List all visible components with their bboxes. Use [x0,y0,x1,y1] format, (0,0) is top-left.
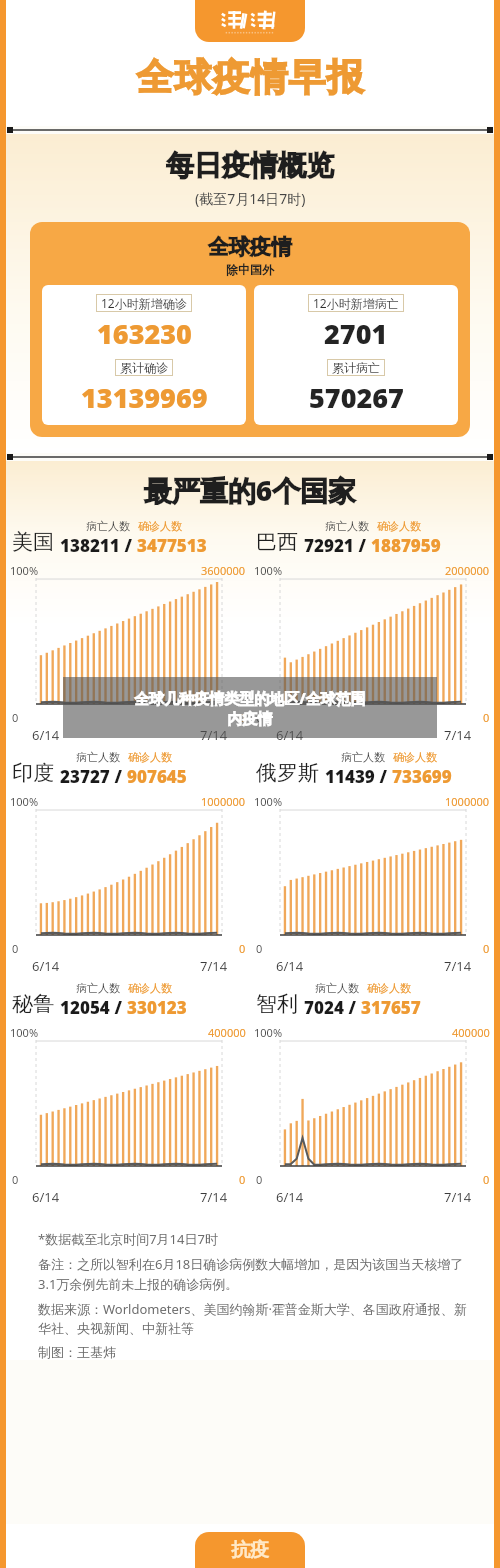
staticText: 7/14 [200,726,228,744]
staticText: 除中国外 [226,262,274,277]
staticText: 每日疫情概览 [166,148,334,183]
staticText: 163230 [97,315,192,352]
button[interactable]: 俄罗斯 [250,750,494,981]
staticText: 病亡人数 [76,750,120,764]
staticText: / [110,765,127,788]
staticText: 最严重的6个国家 [6,471,494,509]
staticText: 美国 [12,529,54,555]
staticText: 巴西 [256,529,298,555]
button[interactable]: 巴西 [250,519,494,750]
staticText: 病亡人数 [86,519,130,533]
staticText: 6/14 [32,1188,60,1206]
staticText: 23727 [60,765,110,788]
staticText: 7/14 [444,957,472,975]
staticText: 6/14 [276,726,304,744]
staticText: 13139969 [81,379,208,416]
staticText: 智利 [256,991,298,1017]
staticText: 2701 [324,315,388,352]
button[interactable]: The Paper logo [195,0,305,42]
staticText: 0 [256,710,263,725]
staticText: 733699 [392,765,452,788]
button[interactable]: 智利 [250,981,494,1212]
button[interactable]: 秘鲁 [6,981,250,1212]
button[interactable]: 12小时新增病亡 [254,285,458,425]
staticText: 1000000 [201,794,246,809]
staticText: 11439 [325,765,375,788]
staticText: 数据来源：Worldometers、美国约翰斯·霍普金斯大学、各国政府通报、新华… [38,1300,472,1337]
staticText: 0 [483,941,490,956]
staticText: 907645 [127,765,187,788]
staticText: 确诊人数 [128,750,172,764]
staticText: 6/14 [276,957,304,975]
staticText: 0 [12,1172,19,1187]
staticText: 确诊人数 [138,519,182,533]
staticText: / [120,534,137,557]
button[interactable]: 印度 [6,750,250,981]
staticText: / [344,996,361,1019]
staticText: 制图：王基炜 [38,1344,116,1360]
staticText: 0 [12,710,19,725]
staticText: 100% [254,794,283,809]
staticText: 400000 [208,1025,246,1040]
staticText: 7/14 [200,957,228,975]
staticText: 俄罗斯 [256,760,319,786]
staticText: 72921 [304,534,354,557]
staticText: 7024 [304,996,344,1019]
staticText: / [110,996,127,1019]
staticText: 0 [256,1172,263,1187]
staticText: 7/14 [444,1188,472,1206]
staticText: / [354,534,371,557]
staticText: 确诊人数 [393,750,437,764]
staticText: 3477513 [137,534,207,557]
staticText: 2000000 [445,563,490,578]
staticText: 全球疫情早报 [136,54,364,101]
staticText: 备注：之所以智利在6月18日确诊病例数大幅增加，是因为该国当天核增了3.1万余例… [38,1255,472,1293]
staticText: 全球疫情 [208,234,292,260]
staticText: 330123 [127,996,187,1019]
staticText: 12小时新增病亡 [313,295,399,311]
button[interactable]: 美国 [6,519,250,750]
staticText: 病亡人数 [325,519,369,533]
staticText: 确诊人数 [128,981,172,995]
staticText: 秘鲁 [12,991,54,1017]
staticText: 印度 [12,760,54,786]
staticText: 6/14 [276,1188,304,1206]
staticText: 6/14 [32,957,60,975]
staticText: *数据截至北京时间7月14日7时 [38,1230,218,1248]
staticText: 400000 [452,1025,490,1040]
staticText: (截至7月14日7时) [195,189,306,208]
staticText: 0 [12,941,19,956]
staticText: 570267 [309,379,404,416]
staticText: 317657 [361,996,421,1019]
staticText: 累计确诊 [120,360,168,375]
staticText: 7/14 [200,1188,228,1206]
button[interactable]: 12小时新增确诊 [42,285,246,425]
staticText: 100% [10,1025,39,1040]
staticText: 确诊人数 [377,519,421,533]
staticText: 0 [256,941,263,956]
staticText: 7/14 [444,726,472,744]
staticText: 确诊人数 [367,981,411,995]
staticText: 0 [239,710,246,725]
staticText: 12小时新增确诊 [101,295,187,311]
staticText: 累计病亡 [332,360,380,375]
button[interactable]: 全球疫情 [30,222,470,437]
staticText: 0 [239,1172,246,1187]
button[interactable]: 抗疫 [195,1532,305,1568]
staticText: 100% [10,794,39,809]
staticText: 病亡人数 [76,981,120,995]
staticText: 病亡人数 [341,750,385,764]
staticText: / [375,765,392,788]
staticText: 3600000 [201,563,246,578]
staticText: 1887959 [371,534,441,557]
staticText: 病亡人数 [315,981,359,995]
staticText: 0 [483,1172,490,1187]
staticText: 全球几种疫情类型的地区/全球范围 内疫情 [134,688,366,728]
staticText: 1000000 [445,794,490,809]
staticText: 100% [10,563,39,578]
staticText: 6/14 [32,726,60,744]
staticText: 抗疫 [231,1538,269,1562]
staticText: 138211 [60,534,120,557]
staticText: 12054 [60,996,110,1019]
staticText: 100% [254,1025,283,1040]
